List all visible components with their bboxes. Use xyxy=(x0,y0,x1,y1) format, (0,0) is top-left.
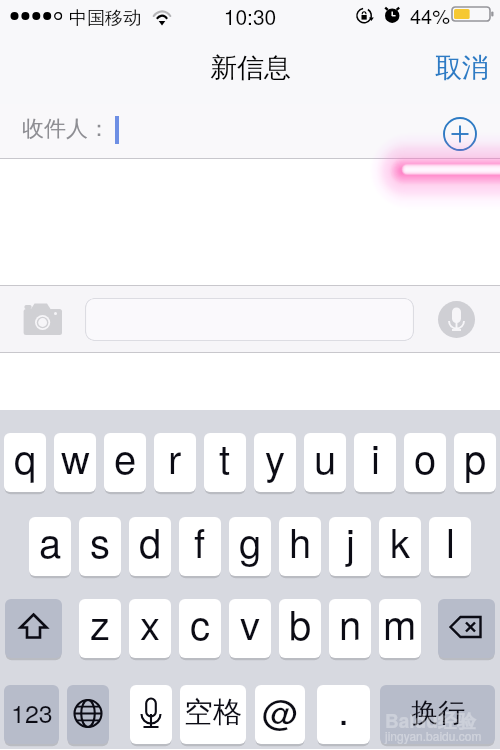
button[interactable]: n xyxy=(329,599,371,658)
button[interactable]: k xyxy=(379,517,421,576)
button[interactable]: s xyxy=(79,517,121,576)
button[interactable]: v xyxy=(229,599,271,658)
staticText: v xyxy=(240,599,260,651)
staticText: c xyxy=(190,599,210,651)
staticText: m xyxy=(383,599,417,651)
button[interactable]: 取消 xyxy=(421,43,500,93)
staticText: 123 xyxy=(11,694,53,730)
staticText: @ xyxy=(262,685,299,737)
staticText: 10:30 xyxy=(0,1,500,31)
button[interactable]: w xyxy=(54,433,96,492)
button[interactable]: o xyxy=(404,433,446,492)
staticText: i xyxy=(371,433,380,485)
staticText: x xyxy=(140,599,160,651)
button[interactable]: y xyxy=(254,433,296,492)
button[interactable]: m xyxy=(379,599,421,658)
staticText: t xyxy=(219,433,231,485)
staticText: 收件人： xyxy=(22,115,110,143)
staticText: p xyxy=(464,433,487,485)
button[interactable]: Delete xyxy=(438,599,495,658)
button[interactable]: Add contact xyxy=(443,117,477,151)
button[interactable]: Voice message xyxy=(438,301,475,338)
button[interactable]: Switch keyboard xyxy=(67,685,109,744)
button[interactable]: . xyxy=(317,685,370,744)
staticText: q xyxy=(14,433,37,485)
staticText: 取消 xyxy=(435,51,489,85)
button[interactable]: t xyxy=(204,433,246,492)
button[interactable]: Shift xyxy=(5,599,62,658)
button[interactable]: l xyxy=(429,517,471,576)
button[interactable]: 换行 xyxy=(380,685,495,744)
button[interactable]: x xyxy=(129,599,171,658)
staticText: l xyxy=(446,517,455,569)
button[interactable]: h xyxy=(279,517,321,576)
staticText: h xyxy=(289,517,312,569)
staticText: 换行 xyxy=(411,696,465,730)
staticText: 44% xyxy=(410,1,451,30)
staticText: n xyxy=(339,599,362,651)
staticText: z xyxy=(90,599,110,651)
staticText: Baidu经验 xyxy=(385,707,476,734)
button[interactable]: r xyxy=(154,433,196,492)
button[interactable]: @ xyxy=(255,685,305,744)
staticText: a xyxy=(39,517,62,569)
staticText: b xyxy=(289,599,312,651)
staticText: 空格 xyxy=(184,694,242,731)
staticText: k xyxy=(390,517,410,569)
staticText: . xyxy=(338,685,350,736)
button[interactable]: b xyxy=(279,599,321,658)
button[interactable] xyxy=(85,298,414,341)
staticText: f xyxy=(194,517,206,569)
staticText: d xyxy=(139,517,162,569)
button[interactable]: f xyxy=(179,517,221,576)
button[interactable]: j xyxy=(329,517,371,576)
button[interactable]: i xyxy=(354,433,396,492)
staticText: 中国移动 xyxy=(69,7,141,30)
staticText: s xyxy=(90,517,110,569)
staticText: o xyxy=(414,433,437,485)
button[interactable]: u xyxy=(304,433,346,492)
button[interactable]: 空格 xyxy=(180,685,246,744)
button[interactable]: z xyxy=(79,599,121,658)
staticText: jingyan.baidu.com xyxy=(385,727,482,744)
button[interactable]: p xyxy=(454,433,496,492)
staticText: e xyxy=(114,433,137,485)
staticText: 新信息 xyxy=(210,51,291,85)
button[interactable]: g xyxy=(229,517,271,576)
staticText: j xyxy=(346,517,355,569)
button[interactable]: a xyxy=(29,517,71,576)
button[interactable]: c xyxy=(179,599,221,658)
button[interactable]: Voice input xyxy=(130,685,172,744)
staticText: g xyxy=(239,517,262,569)
button[interactable]: q xyxy=(4,433,46,492)
staticText: u xyxy=(314,433,337,485)
staticText: y xyxy=(265,433,285,485)
staticText: w xyxy=(61,433,90,485)
staticText: r xyxy=(168,433,182,485)
button[interactable]: d xyxy=(129,517,171,576)
button[interactable]: e xyxy=(104,433,146,492)
button[interactable]: 123 xyxy=(4,685,59,744)
button[interactable]: Camera xyxy=(22,303,62,335)
